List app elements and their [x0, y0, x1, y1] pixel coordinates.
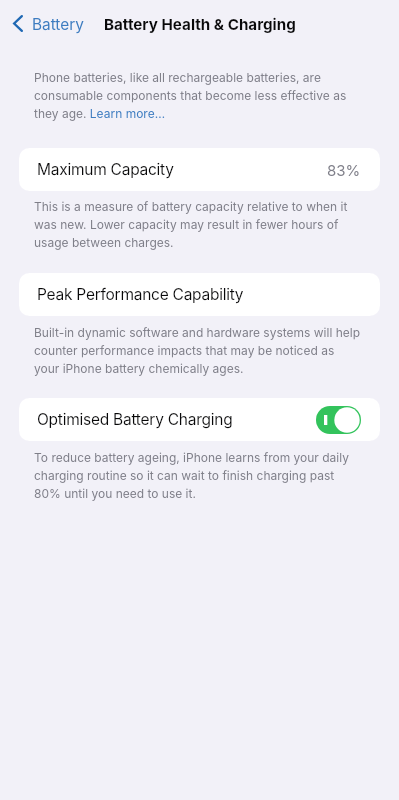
staticText: Peak Performance Capability [37, 285, 244, 304]
button[interactable]: Learn more about battery health [90, 104, 165, 121]
button[interactable]: Maximum Capacity [19, 148, 380, 191]
staticText: 83% [327, 161, 361, 179]
staticText: Battery Health & Charging [104, 15, 296, 33]
staticText: Built-in dynamic software and hardware s… [34, 325, 361, 376]
button[interactable]: Optimised Battery Charging toggle, on [316, 406, 361, 434]
staticText: This is a measure of battery capacity re… [34, 199, 361, 250]
staticText: Optimised Battery Charging [37, 410, 233, 429]
button[interactable]: Peak Performance Capability [19, 273, 380, 316]
staticText: To reduce battery ageing, iPhone learns … [34, 450, 361, 501]
staticText: Phone batteries, like all rechargeable b… [34, 70, 359, 121]
button[interactable]: Back to Battery [0, 8, 94, 41]
staticText: Maximum Capacity [37, 160, 174, 179]
button[interactable]: Optimised Battery Charging [19, 398, 380, 441]
staticText: Battery [32, 15, 84, 34]
